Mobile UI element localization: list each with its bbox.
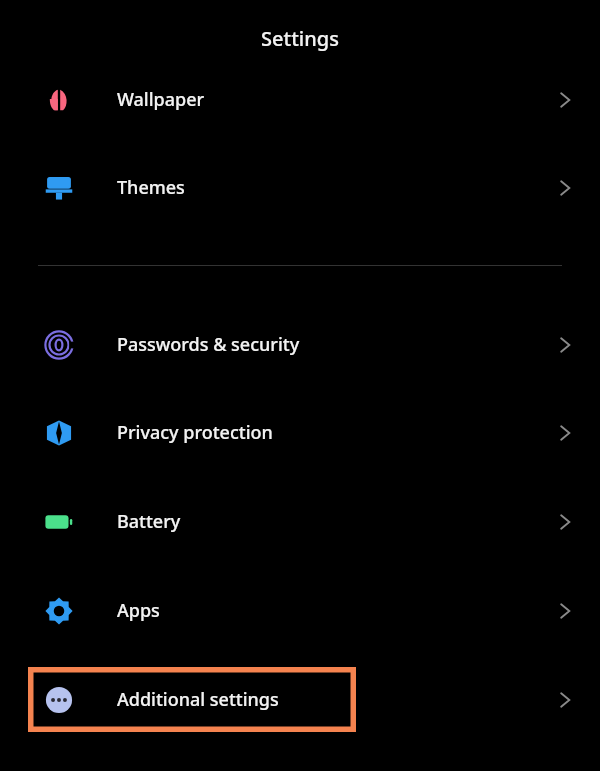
staticText: Privacy protection bbox=[117, 420, 273, 445]
button[interactable]: Apps bbox=[0, 566, 600, 655]
staticText: Passwords & security bbox=[117, 332, 300, 357]
button[interactable]: Additional settings bbox=[0, 655, 600, 744]
staticText: Wallpaper bbox=[117, 87, 205, 112]
button[interactable]: Wallpaper bbox=[0, 55, 600, 144]
staticText: Apps bbox=[117, 598, 160, 623]
staticText: Additional settings bbox=[117, 687, 279, 712]
button[interactable]: Passwords & security bbox=[0, 300, 600, 389]
button[interactable]: Battery bbox=[0, 477, 600, 566]
button[interactable]: Themes bbox=[0, 143, 600, 232]
staticText: Battery bbox=[117, 509, 181, 534]
staticText: Settings bbox=[261, 25, 339, 52]
staticText: Themes bbox=[117, 175, 185, 200]
button[interactable]: Privacy protection bbox=[0, 388, 600, 477]
